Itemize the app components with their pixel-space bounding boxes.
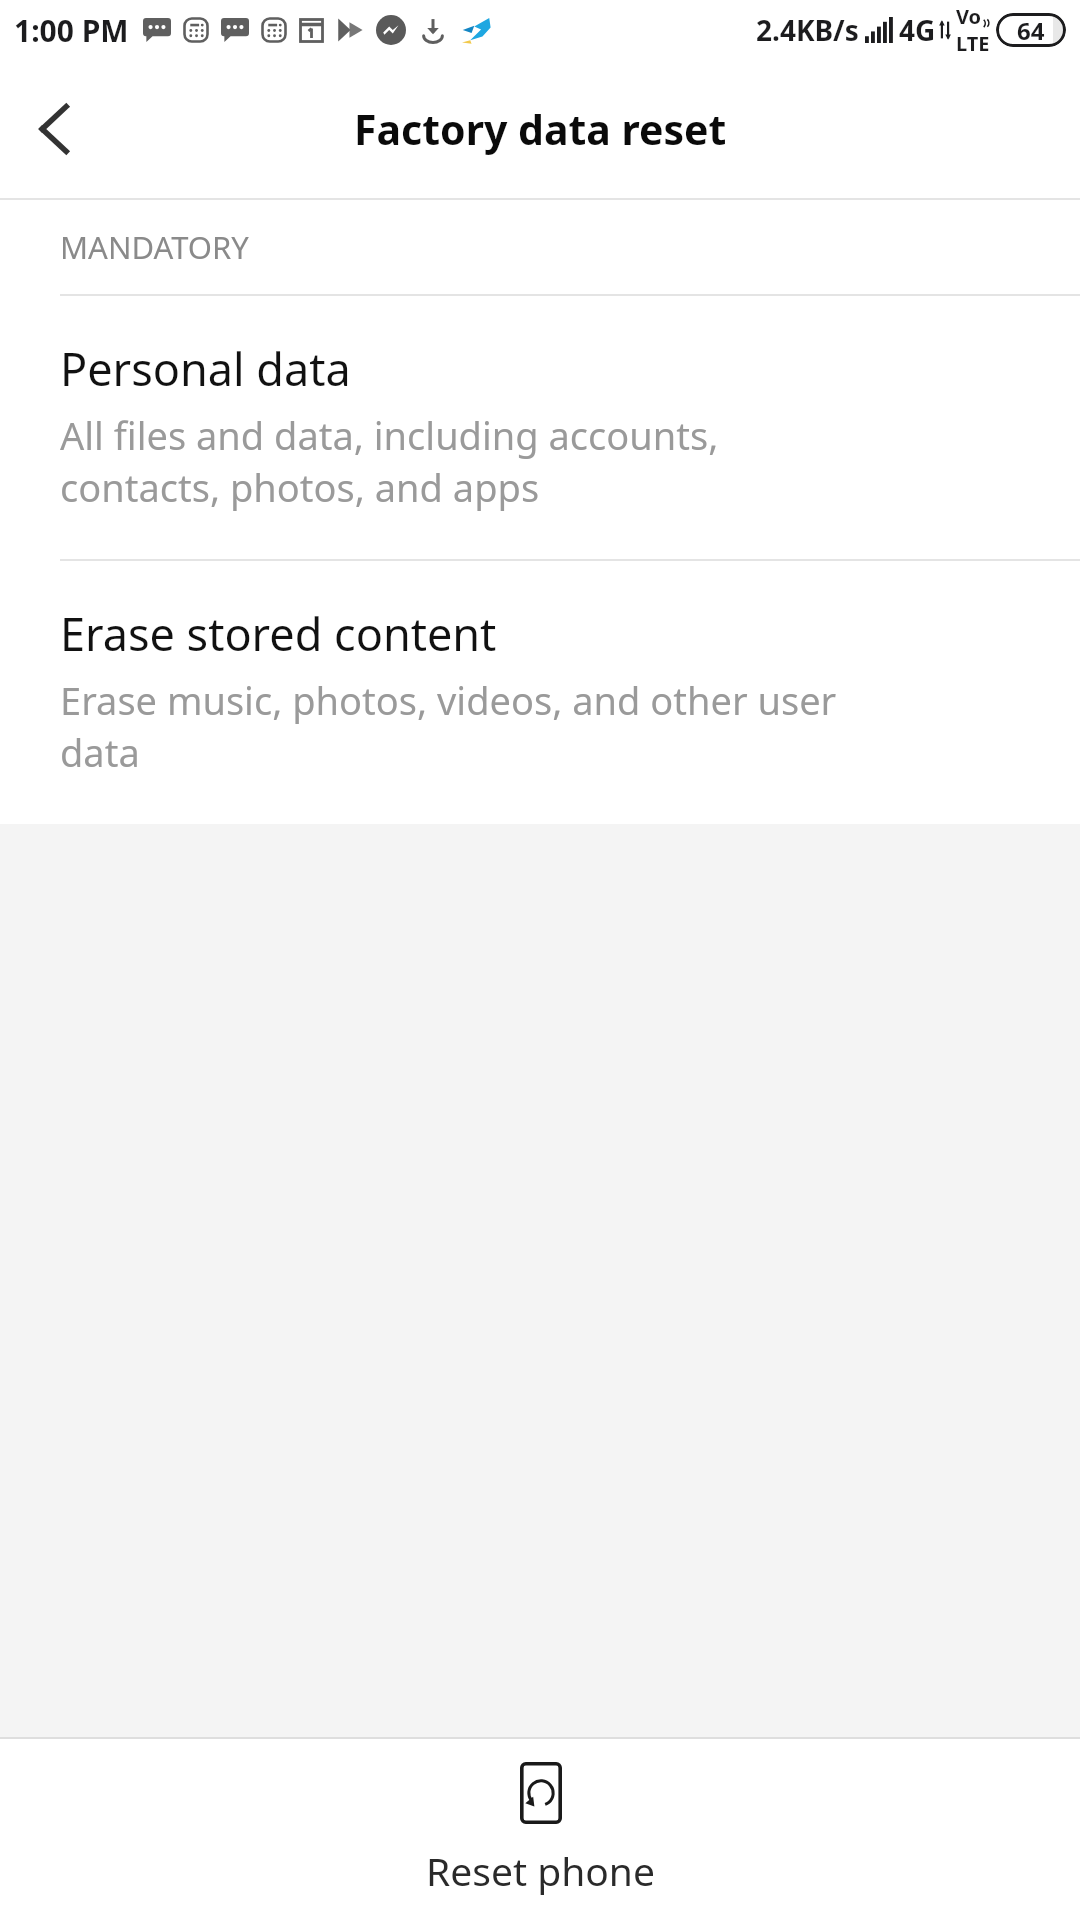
- staticText: All files and data, including accounts,: [60, 409, 719, 461]
- staticText: 2.4KB/s: [756, 11, 859, 49]
- staticText: MANDATORY: [60, 226, 249, 268]
- staticText: Personal data: [60, 338, 351, 399]
- staticText: contacts, photos, and apps: [60, 461, 540, 513]
- button[interactable]: Reset phone: [0, 1739, 1080, 1920]
- button[interactable]: Personal data: [0, 296, 1080, 559]
- staticText: Erase stored content: [60, 603, 497, 664]
- staticText: LTE: [956, 30, 990, 57]
- staticText: Erase music, photos, videos, and other u…: [60, 674, 837, 726]
- staticText: Vo: [956, 3, 982, 30]
- staticText: Factory data reset: [354, 101, 727, 157]
- button[interactable]: Back: [0, 74, 110, 184]
- staticText: 64: [1017, 14, 1045, 47]
- staticText: 4G: [899, 11, 936, 49]
- button[interactable]: Erase stored content: [0, 561, 1080, 824]
- staticText: Reset phone: [426, 1844, 655, 1897]
- staticText: 1:00 PM: [14, 10, 129, 51]
- staticText: data: [60, 726, 140, 778]
